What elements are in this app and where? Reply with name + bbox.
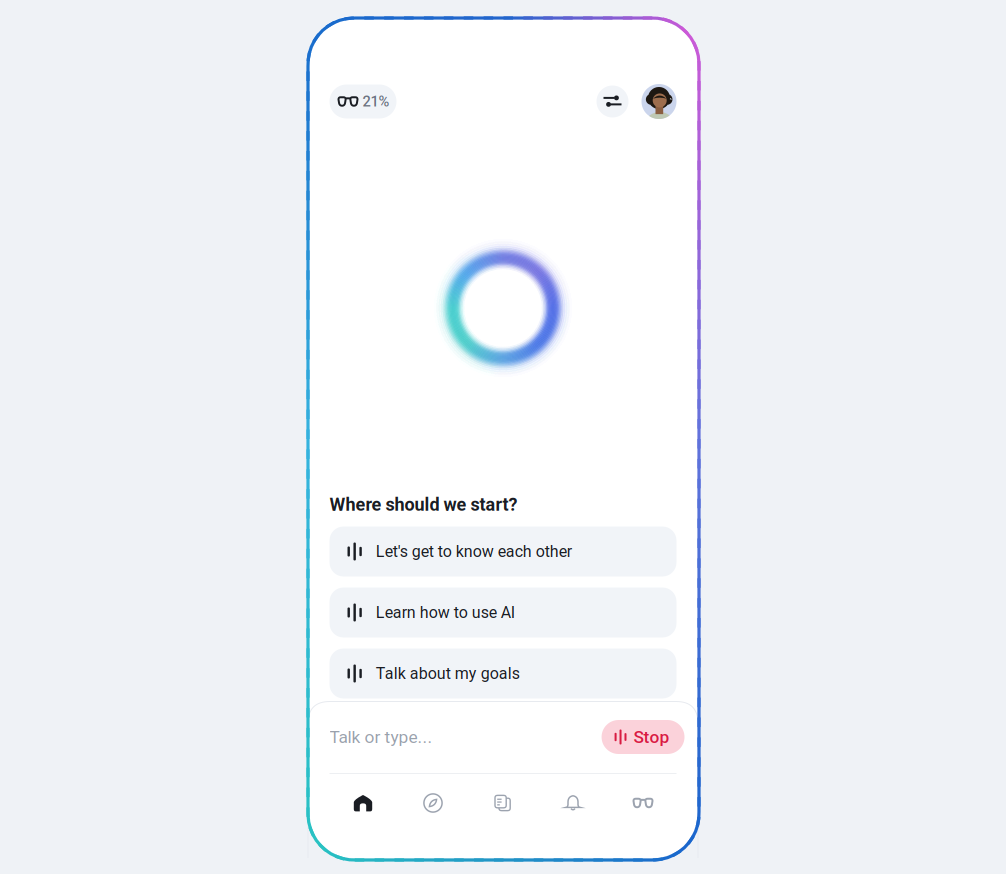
staticText: Talk or type... (329, 727, 432, 747)
button[interactable]: Profile (641, 84, 676, 119)
staticText: Talk about my goals (376, 664, 520, 683)
button[interactable]: Learn how to use AI (329, 587, 676, 637)
button[interactable]: Stop (602, 720, 684, 754)
button[interactable]: Home (328, 781, 398, 825)
button[interactable]: Glasses (608, 781, 678, 825)
staticText: Let's get to know each other (376, 542, 572, 561)
button[interactable]: Notifications (538, 781, 608, 825)
button[interactable]: 21% (329, 84, 396, 118)
button[interactable]: Library (468, 781, 538, 825)
staticText: Learn how to use AI (376, 603, 515, 622)
button[interactable]: Explore (398, 781, 468, 825)
button[interactable]: Let's get to know each other (329, 526, 676, 576)
button[interactable]: Talk about my goals (329, 648, 676, 698)
staticText: Where should we start? (329, 494, 517, 515)
button[interactable]: Settings (596, 85, 628, 117)
staticText: Stop (633, 727, 669, 747)
staticText: 21% (362, 93, 389, 110)
